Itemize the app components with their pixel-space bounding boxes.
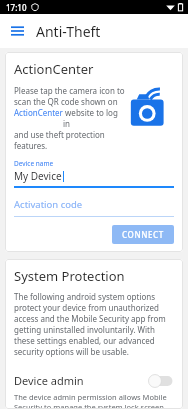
staticText: ActionCenter (14, 60, 94, 78)
button[interactable]: CONNECT (112, 225, 174, 244)
staticText: My Device (14, 169, 62, 183)
staticText: Device name (14, 159, 54, 168)
staticText: The device admin permission allows Mobil… (14, 392, 174, 409)
staticText: Device admin (14, 373, 84, 388)
staticText: Activation code (14, 198, 83, 211)
button[interactable]: ActionCenter (14, 107, 63, 118)
staticText: and use theft protection features. (14, 129, 126, 151)
staticText: The following android system options pro… (14, 291, 174, 357)
staticText: scan the QR code shown on (14, 96, 118, 107)
staticText: Anti-Theft (36, 22, 101, 41)
staticText: System Protection (14, 267, 125, 285)
staticText: CONNECT (122, 229, 164, 240)
staticText: Please tap the camera icon to (14, 85, 125, 96)
button[interactable]: Scan QR code with camera (128, 85, 174, 131)
staticText: 17:10 (6, 2, 27, 13)
button[interactable]: Open navigation menu (5, 19, 29, 43)
button[interactable]: Device admin (5, 367, 183, 409)
staticText: website to log in (63, 107, 126, 129)
button[interactable]: Toggle off (148, 374, 174, 388)
